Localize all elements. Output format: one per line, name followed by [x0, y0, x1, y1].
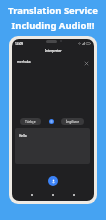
button[interactable]: İngilizce [61, 118, 84, 125]
staticText: Hello [19, 134, 27, 138]
staticText: Türkçe [25, 119, 36, 124]
staticText: Translation Service [0, 4, 106, 17]
staticText: merhaba [17, 60, 31, 64]
button[interactable]: Clear text [83, 60, 89, 66]
staticText: 14:09 [15, 42, 24, 46]
staticText: Interpreter [45, 49, 62, 53]
button[interactable]: Swap languages [49, 119, 54, 124]
button[interactable]: Record with microphone [48, 176, 58, 186]
button[interactable]: Home [49, 191, 57, 199]
staticText: İngilizce [66, 119, 80, 124]
staticText: Including Audio!!! [0, 19, 106, 32]
button[interactable]: merhaba [15, 56, 91, 70]
button[interactable]: Recent apps [70, 191, 78, 199]
button[interactable]: Hello [15, 128, 90, 164]
button[interactable]: Back [28, 191, 36, 199]
button[interactable]: Interpreter [12, 46, 94, 56]
button[interactable]: Türkçe [20, 118, 41, 125]
